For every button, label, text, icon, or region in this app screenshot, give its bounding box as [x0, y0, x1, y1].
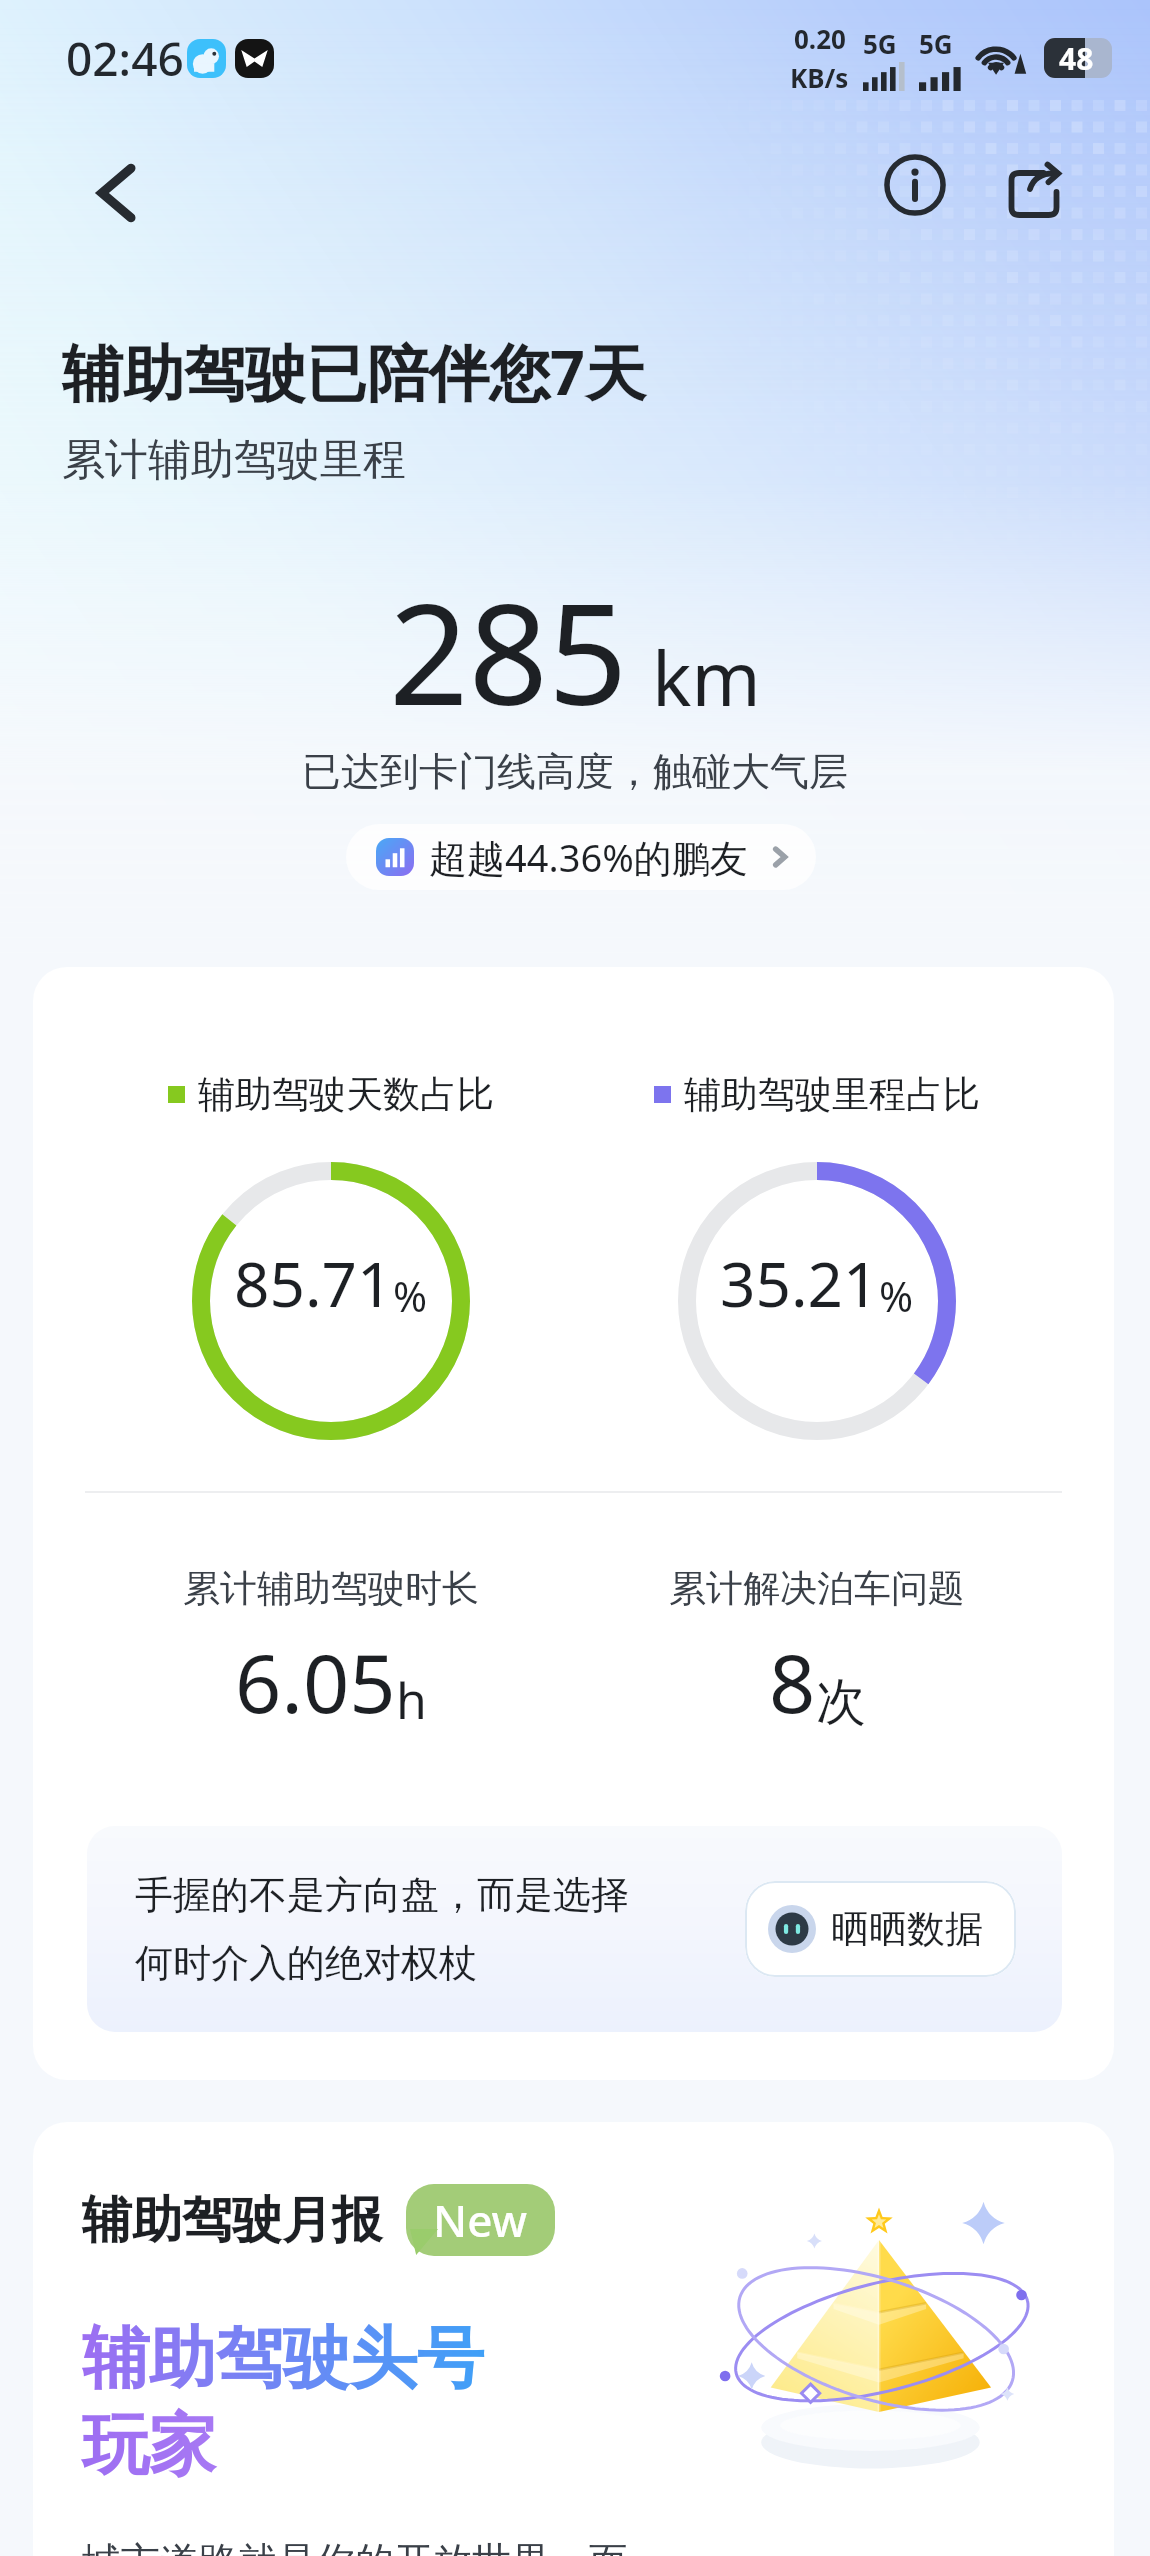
staticText: 35.21 — [720, 1241, 879, 1325]
staticText: km — [652, 627, 761, 728]
staticText: 累计辅助驾驶时长 — [183, 1565, 479, 1612]
staticText: 48 — [1059, 38, 1094, 78]
staticText: 手握的不是方向盘，而是选择 — [135, 1871, 629, 1919]
staticText: % — [879, 1268, 914, 1324]
staticText: 5G — [863, 26, 897, 61]
staticText: 6.05 — [235, 1626, 396, 1736]
staticText: h — [396, 1666, 427, 1734]
staticText: 累计辅助驾驶里程 — [62, 433, 406, 487]
staticText: 累计解决泊车问题 — [669, 1565, 965, 1612]
staticText: 辅助驾驶天数占比 — [198, 1071, 494, 1118]
staticText: New — [433, 2190, 528, 2250]
staticText: % — [393, 1268, 428, 1324]
staticText: 02:46 — [66, 27, 184, 90]
button[interactable]: 超越44.36%的鹏友 — [346, 824, 816, 890]
staticText: 何时介入的绝对权杖 — [135, 1939, 477, 1987]
staticText: 0.20 — [794, 21, 846, 56]
staticText: 8 — [769, 1626, 816, 1736]
staticText: 次 — [816, 1671, 866, 1734]
staticText: 玩家 — [82, 2403, 216, 2487]
staticText: 85.71 — [234, 1241, 393, 1325]
staticText: 晒晒数据 — [831, 1905, 983, 1953]
staticText: 辅助驾驶里程占比 — [684, 1071, 980, 1118]
staticText: 285 — [389, 556, 628, 745]
staticText: 辅助驾驶已陪伴您7天 — [62, 330, 646, 413]
button[interactable]: Share — [984, 143, 1084, 243]
staticText: 超越44.36%的鹏友 — [429, 831, 748, 883]
staticText: 城市道路就是你的开放世界，而 — [82, 2537, 628, 2556]
button[interactable]: 晒晒数据 — [745, 1881, 1016, 1977]
staticText: 已达到卡门线高度，触碰大气层 — [0, 747, 1150, 796]
staticText: 辅助驾驶月报 — [82, 2189, 382, 2252]
staticText: 5G — [919, 26, 953, 61]
button[interactable]: Back — [65, 138, 175, 248]
button[interactable]: Info — [860, 138, 970, 248]
button[interactable]: 辅助驾驶月报 — [33, 2122, 1114, 2556]
staticText: KB/s — [790, 60, 849, 95]
staticText: 辅助驾驶头号 — [82, 2316, 484, 2400]
